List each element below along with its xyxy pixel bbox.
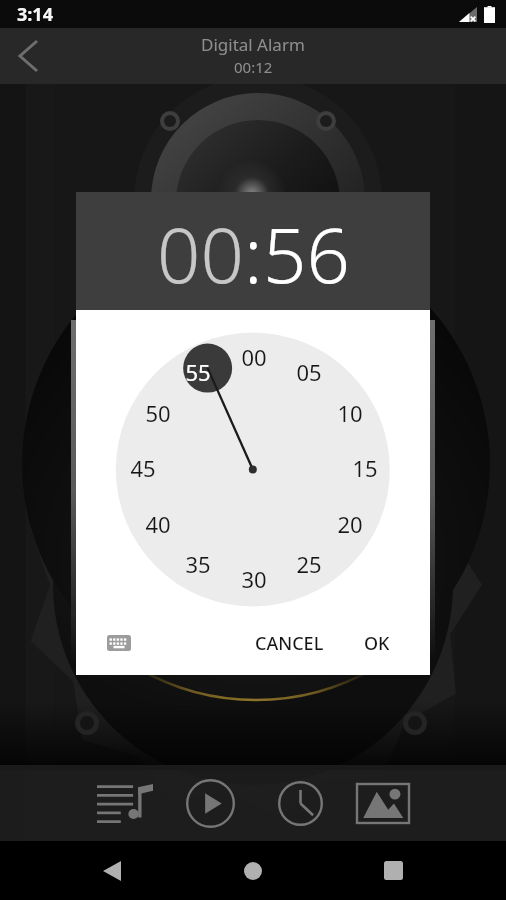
- staticText: 3:14: [17, 2, 53, 27]
- button[interactable]: Home: [223, 841, 283, 900]
- button[interactable]: 45: [130, 453, 156, 483]
- button[interactable]: Keyboard input: [97, 621, 141, 665]
- staticText: CANCEL: [255, 631, 324, 656]
- button[interactable]: 50: [145, 398, 171, 428]
- button[interactable]: 56: [263, 202, 350, 306]
- staticText: Digital Alarm: [201, 33, 305, 56]
- button[interactable]: Recents: [363, 841, 423, 900]
- staticText: OK: [364, 631, 390, 656]
- staticText: :: [244, 202, 263, 306]
- button[interactable]: CANCEL: [245, 621, 334, 666]
- button[interactable]: 25: [296, 549, 322, 579]
- staticText: 00:12: [234, 57, 273, 77]
- button[interactable]: Back: [0, 28, 56, 84]
- button[interactable]: 35: [185, 549, 211, 579]
- button[interactable]: Timer: [260, 765, 340, 841]
- button[interactable]: Background image: [343, 765, 423, 841]
- button[interactable]: 55: [185, 357, 211, 387]
- button[interactable]: Playlist: [85, 765, 165, 841]
- button[interactable]: 00: [157, 202, 244, 306]
- button[interactable]: 30: [241, 564, 267, 594]
- button[interactable]: Play: [170, 765, 250, 841]
- button[interactable]: 00: [241, 342, 267, 372]
- button[interactable]: 20: [337, 509, 363, 539]
- button[interactable]: Back: [82, 841, 142, 900]
- button[interactable]: 10: [337, 398, 363, 428]
- button[interactable]: 05: [296, 357, 322, 387]
- button[interactable]: 40: [145, 509, 171, 539]
- button[interactable]: OK: [354, 621, 400, 666]
- button[interactable]: 15: [352, 453, 378, 483]
